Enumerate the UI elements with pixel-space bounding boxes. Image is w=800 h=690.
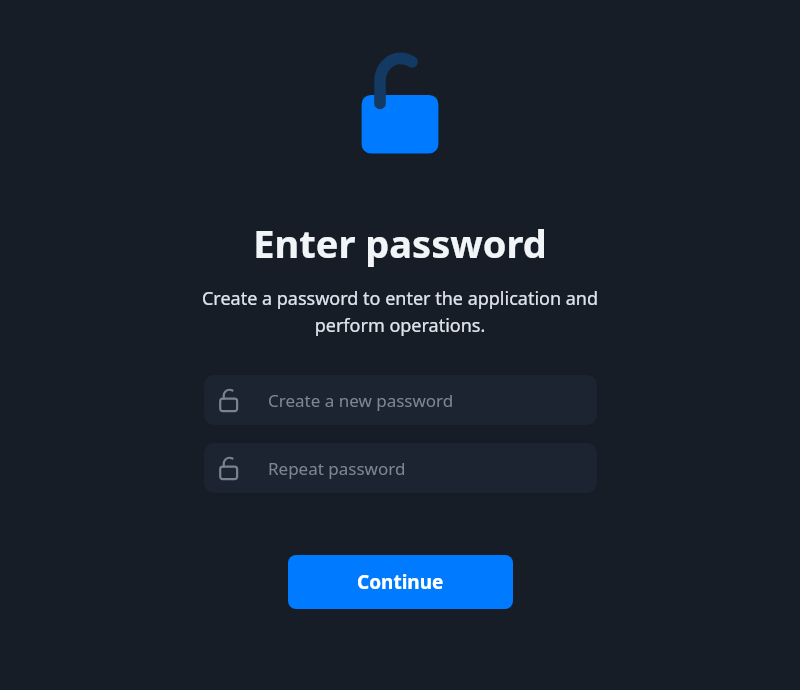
button[interactable]: Continue: [288, 555, 513, 609]
staticText: Enter password: [253, 217, 547, 269]
other: Unlocked padlock: [360, 53, 440, 154]
button[interactable]: Repeat password: [204, 443, 597, 493]
staticText: Continue: [357, 569, 444, 595]
staticText: Create a new password: [268, 389, 454, 412]
staticText: Repeat password: [268, 457, 406, 480]
staticText: Create a password to enter the applicati…: [190, 286, 610, 337]
button[interactable]: Create a new password: [204, 375, 597, 425]
